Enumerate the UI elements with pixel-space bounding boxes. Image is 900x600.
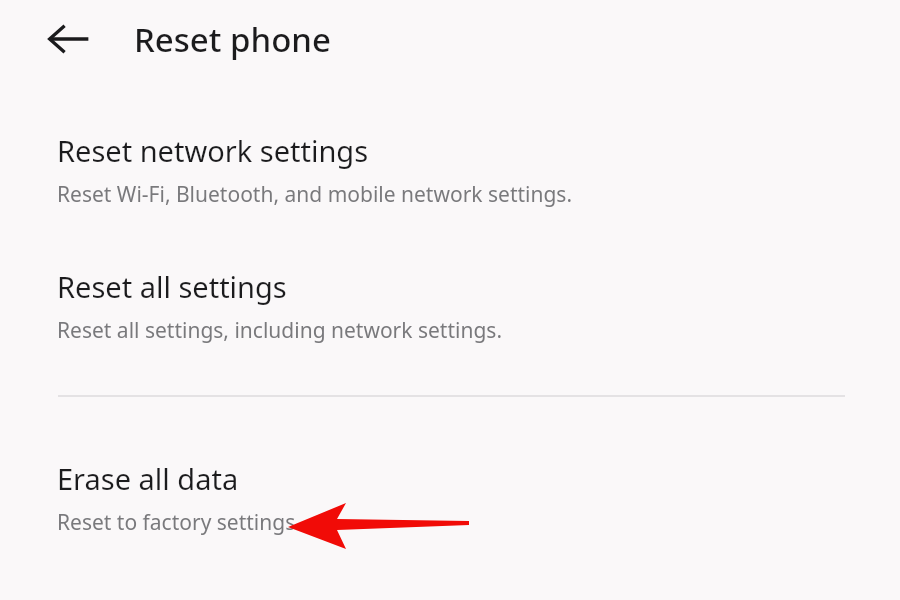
staticText: Reset all settings, including network se…	[57, 316, 503, 345]
staticText: Reset to factory settings	[57, 508, 296, 537]
button[interactable]: Reset all settings	[0, 267, 900, 345]
staticText: Reset phone	[134, 17, 331, 62]
button[interactable]: Back	[41, 11, 97, 67]
staticText: Reset all settings	[57, 267, 287, 306]
button[interactable]: Erase all data	[0, 459, 900, 537]
staticText: Reset Wi-Fi, Bluetooth, and mobile netwo…	[57, 180, 573, 209]
staticText: Reset network settings	[57, 131, 369, 170]
button[interactable]: Reset network settings	[0, 131, 900, 209]
staticText: Erase all data	[57, 459, 239, 498]
